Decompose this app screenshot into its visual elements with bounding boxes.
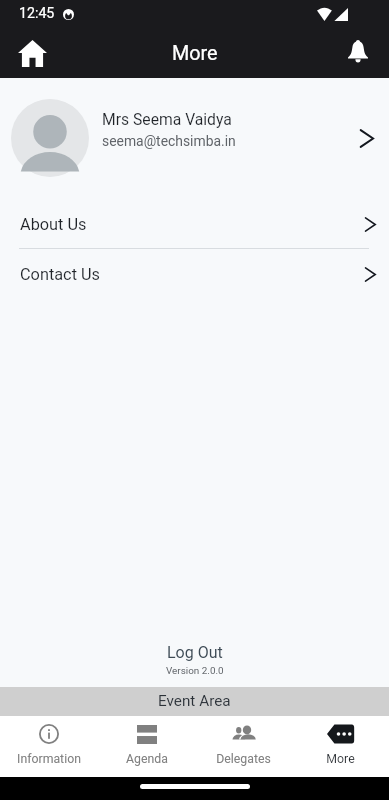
staticText: Log Out bbox=[167, 643, 223, 662]
button[interactable]: Log Out bbox=[151, 641, 239, 664]
button[interactable]: Contact Us bbox=[0, 249, 389, 301]
button[interactable]: Mrs Seema Vaidya bbox=[0, 99, 389, 178]
staticText: Contact Us bbox=[20, 265, 100, 284]
staticText: 12:45 bbox=[19, 5, 55, 22]
button[interactable]: Notifications bbox=[332, 28, 389, 78]
staticText: Agenda bbox=[126, 752, 168, 766]
button[interactable]: Delegates bbox=[195, 716, 292, 777]
button[interactable]: Information bbox=[0, 716, 98, 777]
staticText: About Us bbox=[20, 215, 87, 234]
staticText: Mrs Seema Vaidya bbox=[102, 110, 232, 128]
staticText: More bbox=[172, 42, 218, 65]
staticText: Event Area bbox=[158, 692, 231, 710]
button[interactable]: Agenda bbox=[98, 716, 195, 777]
staticText: More bbox=[326, 752, 355, 766]
staticText: Delegates bbox=[216, 752, 271, 766]
button[interactable]: About Us bbox=[0, 196, 389, 248]
button[interactable]: Home bbox=[0, 28, 65, 78]
staticText: Information bbox=[17, 752, 81, 766]
button[interactable]: More bbox=[292, 716, 389, 777]
staticText: Version 2.0.0 bbox=[166, 665, 224, 677]
staticText: seema@techsimba.in bbox=[102, 133, 236, 149]
